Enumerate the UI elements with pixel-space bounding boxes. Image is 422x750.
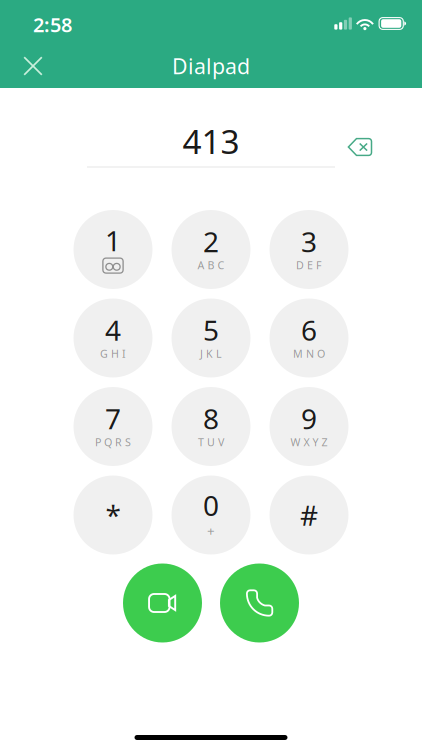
staticText: 3 (301, 223, 317, 260)
staticText: 9 (301, 400, 317, 437)
button[interactable]: 1 (73, 210, 152, 289)
staticText: WXYZ (290, 435, 327, 449)
button[interactable]: 0 (171, 475, 250, 554)
button[interactable]: 3 (269, 210, 348, 289)
staticText: JKL (200, 346, 222, 361)
staticText: Dialpad (172, 52, 250, 80)
button[interactable]: 7 (73, 387, 152, 466)
staticText: PQRS (95, 435, 131, 449)
button[interactable]: 6 (269, 298, 348, 377)
staticText: 7 (105, 400, 121, 437)
button[interactable]: Video call (123, 563, 202, 642)
button[interactable]: Close (11, 44, 55, 88)
button[interactable]: 2 (171, 210, 250, 289)
button[interactable]: 5 (171, 298, 250, 377)
button[interactable]: 4 (73, 298, 152, 377)
staticText: GHI (100, 346, 126, 361)
staticText: 5 (203, 311, 219, 348)
staticText: TUV (198, 435, 224, 449)
staticText: MNO (293, 346, 325, 361)
button[interactable]: Call (220, 563, 299, 642)
staticText: 2:58 (33, 11, 72, 38)
staticText: ABC (197, 258, 224, 272)
staticText: 4 (105, 311, 121, 348)
staticText: 0 (203, 487, 219, 524)
button[interactable]: 9 (269, 387, 348, 466)
staticText: # (300, 496, 318, 534)
button[interactable]: 8 (171, 387, 250, 466)
staticText: 413 (182, 119, 239, 163)
button[interactable]: # (269, 475, 348, 554)
staticText: 1 (105, 222, 121, 259)
button[interactable]: Delete (338, 125, 382, 169)
staticText: * (105, 496, 120, 534)
staticText: 8 (203, 400, 219, 437)
staticText: DEF (296, 258, 322, 272)
staticText: + (207, 522, 215, 539)
staticText: 2 (203, 223, 219, 260)
button[interactable]: * (73, 475, 152, 554)
staticText: 6 (301, 311, 317, 348)
